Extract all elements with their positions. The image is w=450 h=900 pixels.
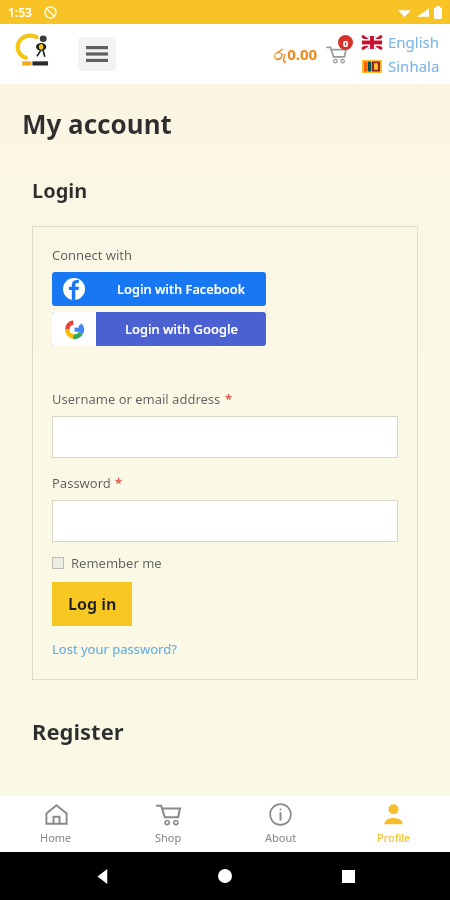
staticText: Login with Facebook bbox=[117, 280, 245, 298]
button[interactable]: Shop bbox=[112, 796, 224, 852]
button[interactable]: Login with Facebook bbox=[52, 272, 266, 306]
button[interactable]: Recents bbox=[328, 856, 368, 896]
staticText: 1:53 bbox=[8, 4, 32, 20]
staticText: 0 bbox=[343, 37, 349, 49]
staticText: My account bbox=[22, 106, 172, 141]
button[interactable]: Home bbox=[0, 796, 112, 852]
staticText: * bbox=[225, 390, 233, 408]
staticText: Username or email address bbox=[52, 390, 221, 408]
staticText: රු0.00 bbox=[274, 44, 318, 64]
staticText: Sinhala bbox=[388, 56, 440, 76]
staticText: English bbox=[388, 32, 440, 52]
staticText: Register bbox=[32, 716, 124, 746]
staticText: Profile bbox=[377, 830, 411, 845]
staticText: Home bbox=[40, 830, 72, 845]
staticText: * bbox=[115, 474, 123, 492]
button[interactable] bbox=[52, 500, 398, 542]
button[interactable]: Remember me bbox=[52, 554, 162, 572]
button[interactable]: Sinhala bbox=[362, 56, 440, 76]
button[interactable]: Logo bbox=[14, 31, 60, 77]
button[interactable]: Back bbox=[83, 856, 123, 896]
button[interactable]: Login with Google bbox=[52, 312, 266, 346]
staticText: Password bbox=[52, 474, 111, 492]
staticText: Login with Google bbox=[125, 320, 238, 338]
staticText: Remember me bbox=[71, 554, 162, 572]
button[interactable]: Log in bbox=[52, 582, 132, 626]
button[interactable]: Home bbox=[205, 856, 245, 896]
button[interactable]: Menu bbox=[78, 37, 116, 71]
button[interactable]: Lost your password? bbox=[52, 640, 177, 658]
staticText: Log in bbox=[68, 593, 117, 615]
staticText: Login bbox=[32, 177, 88, 204]
button[interactable] bbox=[52, 416, 398, 458]
button[interactable]: About bbox=[224, 796, 337, 852]
button[interactable]: රු0.00 bbox=[272, 40, 352, 68]
button[interactable]: English bbox=[362, 32, 440, 52]
button[interactable]: Profile bbox=[337, 796, 450, 852]
staticText: Shop bbox=[155, 830, 182, 845]
staticText: Connect with bbox=[52, 246, 133, 264]
staticText: About bbox=[265, 830, 297, 845]
